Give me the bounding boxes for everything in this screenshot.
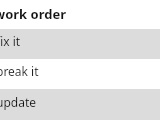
button[interactable]: update	[0, 89, 160, 120]
button[interactable]: fix it	[0, 29, 160, 59]
staticText: break it	[0, 63, 39, 79]
staticText: fix it	[0, 33, 21, 49]
staticText: work order	[0, 5, 66, 23]
staticText: update	[0, 94, 37, 110]
button[interactable]: break it	[0, 59, 160, 89]
